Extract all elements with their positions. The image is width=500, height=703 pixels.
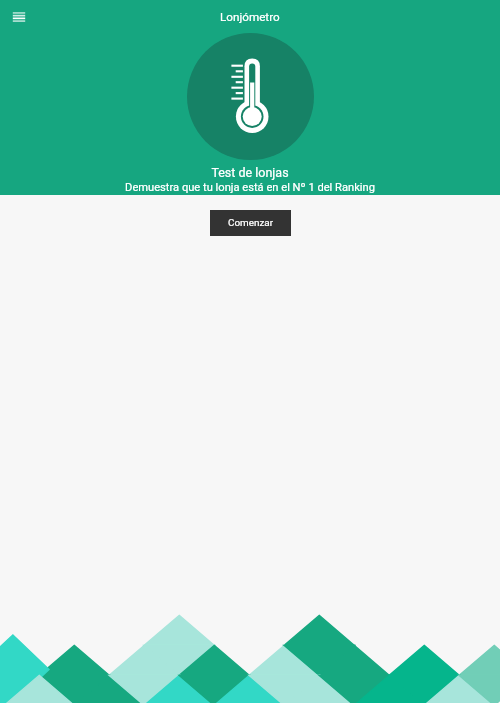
staticText: Test de lonjas (211, 165, 289, 180)
button[interactable]: Open navigation menu (4, 2, 34, 32)
staticText: Comenzar (228, 217, 274, 229)
button[interactable]: Comenzar (210, 210, 291, 236)
staticText: Lonjómetro (220, 10, 280, 24)
staticText: Demuestra que tu lonja está en el Nº 1 d… (125, 181, 375, 194)
